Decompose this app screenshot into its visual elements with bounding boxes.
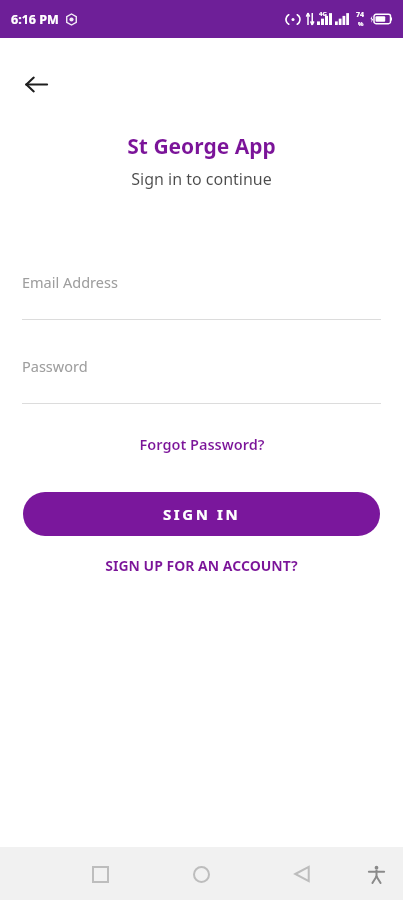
staticText: St George App bbox=[0, 132, 403, 161]
button[interactable]: Back bbox=[14, 62, 58, 106]
staticText: Email Address bbox=[22, 272, 118, 292]
staticText: 74 bbox=[356, 10, 365, 20]
button[interactable]: Password bbox=[22, 356, 381, 404]
staticText: SIGN UP FOR AN ACCOUNT? bbox=[105, 556, 298, 575]
staticText: 4G bbox=[319, 10, 327, 18]
staticText: Password bbox=[22, 356, 88, 376]
button[interactable]: Recent apps bbox=[76, 850, 124, 898]
button[interactable]: SIGN UP FOR AN ACCOUNT? bbox=[0, 551, 403, 580]
button[interactable]: Email Address bbox=[22, 272, 381, 320]
staticText: Forgot Password? bbox=[139, 434, 265, 454]
button[interactable]: Back bbox=[278, 850, 326, 898]
button[interactable]: Accessibility bbox=[354, 852, 398, 896]
staticText: Sign in to continue bbox=[0, 168, 403, 190]
staticText: SIGN IN bbox=[163, 504, 241, 524]
button[interactable]: Home bbox=[177, 850, 225, 898]
staticText: % bbox=[358, 20, 364, 28]
button[interactable]: Forgot Password? bbox=[0, 428, 403, 460]
staticText: 6:16 PM bbox=[11, 11, 59, 28]
button[interactable]: SIGN IN bbox=[23, 492, 380, 536]
